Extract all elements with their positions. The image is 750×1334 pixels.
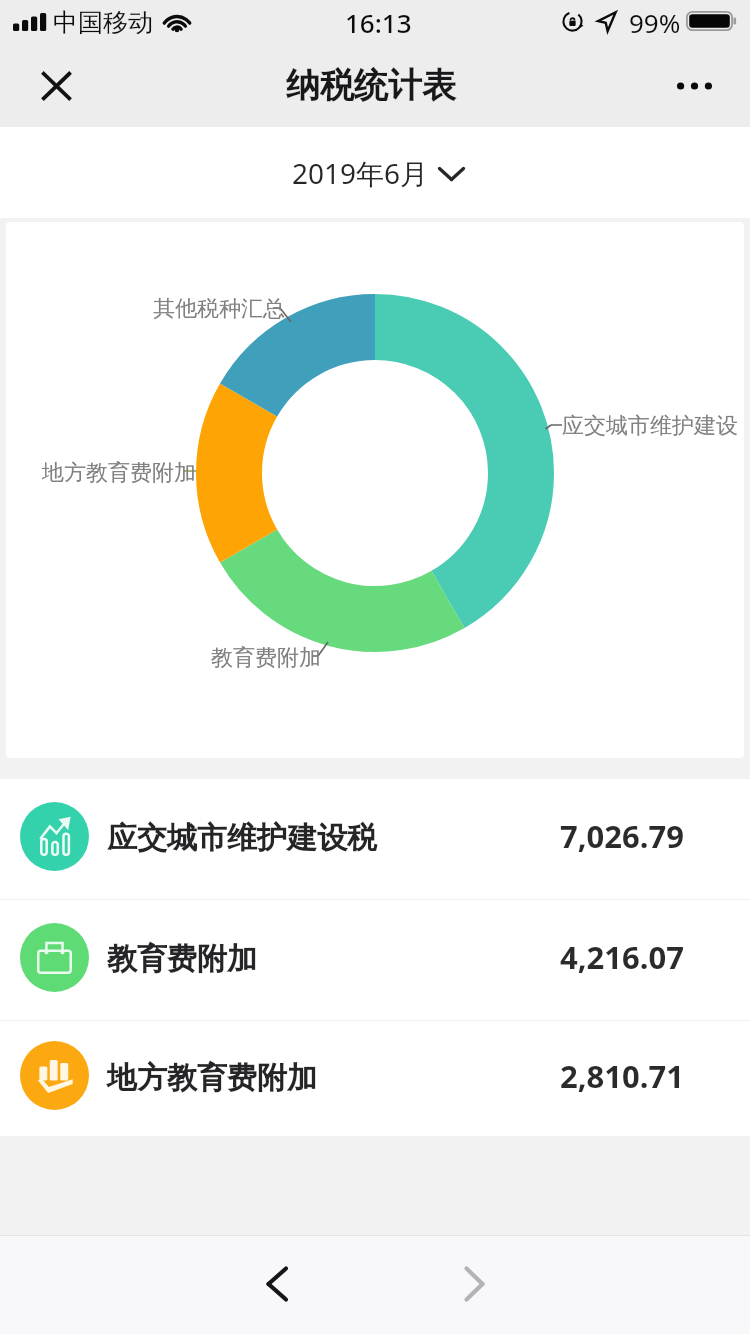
button[interactable]: 地方教育费附加 — [0, 1021, 750, 1136]
staticText: 纳税统计表 — [286, 64, 456, 107]
staticText: 99% — [629, 5, 681, 40]
staticText: 16:13 — [345, 5, 412, 40]
staticText: 7,026.79 — [560, 815, 684, 857]
button[interactable]: 教育费附加 — [0, 900, 750, 1020]
button[interactable]: 2019年6月 — [292, 154, 465, 192]
button[interactable]: Close — [22, 52, 90, 120]
staticText: 2,810.71 — [560, 1055, 684, 1097]
staticText: 应交城市维护建设 — [562, 412, 738, 440]
staticText: 地方教育费附加 — [42, 459, 196, 487]
staticText: 其他税种汇总 — [153, 295, 285, 323]
staticText: 2019年6月 — [292, 154, 429, 192]
staticText: 中国移动 — [53, 7, 153, 38]
staticText: 应交城市维护建设税 — [107, 819, 377, 857]
button[interactable]: Back — [236, 1244, 316, 1324]
staticText: 教育费附加 — [107, 940, 257, 978]
staticText: 教育费附加 — [211, 644, 321, 672]
staticText: 地方教育费附加 — [107, 1059, 317, 1097]
staticText: 4,216.07 — [560, 936, 684, 978]
button[interactable]: 应交城市维护建设税 — [0, 779, 750, 899]
button[interactable]: Forward — [434, 1244, 514, 1324]
button[interactable]: More options — [661, 53, 727, 119]
